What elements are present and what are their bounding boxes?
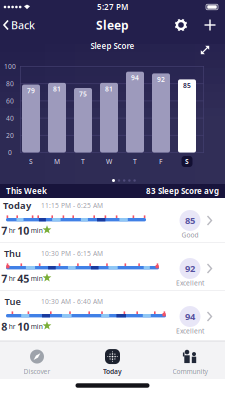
button[interactable]: Back (3, 18, 35, 32)
staticText: 11:15 PM - 6:25 AM (41, 201, 103, 210)
staticText: Thu (4, 247, 21, 260)
staticText: Sleep (96, 17, 129, 33)
staticText: 45 (17, 271, 29, 286)
staticText: 60 (6, 96, 14, 105)
button[interactable]: Add (204, 19, 215, 30)
staticText: 79 (27, 86, 35, 95)
staticText: 100 (4, 62, 16, 71)
staticText: 10 (17, 223, 29, 238)
staticText: S (185, 157, 189, 166)
staticText: 10:30 PM - 6:15 AM (41, 249, 103, 258)
staticText: hr (9, 226, 16, 235)
staticText: 7 (1, 223, 7, 238)
staticText: hr (9, 274, 16, 283)
button[interactable]: Settings (174, 18, 187, 31)
staticText: 20 (6, 131, 14, 140)
staticText: Discover (23, 367, 50, 376)
staticText: 10:30 AM - 6:40 AM (41, 297, 103, 306)
staticText: T (133, 157, 137, 166)
button[interactable]: Community (172, 349, 207, 376)
staticText: Today (3, 199, 31, 212)
staticText: 5:27 PM (97, 2, 128, 12)
staticText: 81 (105, 84, 113, 93)
staticText: S (29, 157, 33, 166)
staticText: Excellent (176, 279, 204, 287)
staticText: F (159, 157, 163, 166)
staticText: Excellent (176, 327, 204, 335)
staticText: M (54, 157, 60, 166)
button[interactable]: Expand (199, 44, 211, 56)
staticText: min (31, 226, 43, 235)
staticText: 10 (17, 319, 29, 334)
button[interactable]: Today (0, 198, 225, 243)
button[interactable]: Tue (0, 291, 225, 339)
staticText: min (31, 274, 43, 283)
staticText: 75 (79, 90, 87, 98)
staticText: 85 (185, 214, 195, 227)
staticText: 7 (1, 271, 7, 286)
staticText: hr (9, 322, 16, 331)
staticText: 83 Sleep Score avg (146, 186, 219, 196)
staticText: 81 (53, 84, 61, 93)
staticText: 92 (185, 262, 195, 275)
button[interactable]: Today (103, 349, 122, 376)
staticText: 8 (1, 319, 7, 334)
staticText: min (31, 322, 43, 331)
staticText: Good (181, 231, 198, 239)
staticText: Sleep Score (90, 41, 134, 51)
staticText: W (106, 157, 112, 166)
staticText: Community (172, 367, 207, 376)
staticText: 94 (185, 310, 195, 323)
button[interactable]: Thu (0, 243, 225, 291)
staticText: 94 (131, 73, 139, 82)
staticText: T (81, 157, 85, 166)
staticText: Back (11, 18, 35, 32)
staticText: 40 (6, 114, 14, 123)
button[interactable]: Discover (23, 349, 50, 376)
staticText: 85 (183, 81, 191, 90)
staticText: 92 (157, 75, 165, 84)
staticText: 80 (6, 79, 14, 88)
staticText: Today (103, 367, 122, 376)
staticText: Tue (5, 295, 21, 308)
staticText: 0 (8, 148, 12, 157)
staticText: This Week (6, 186, 47, 196)
